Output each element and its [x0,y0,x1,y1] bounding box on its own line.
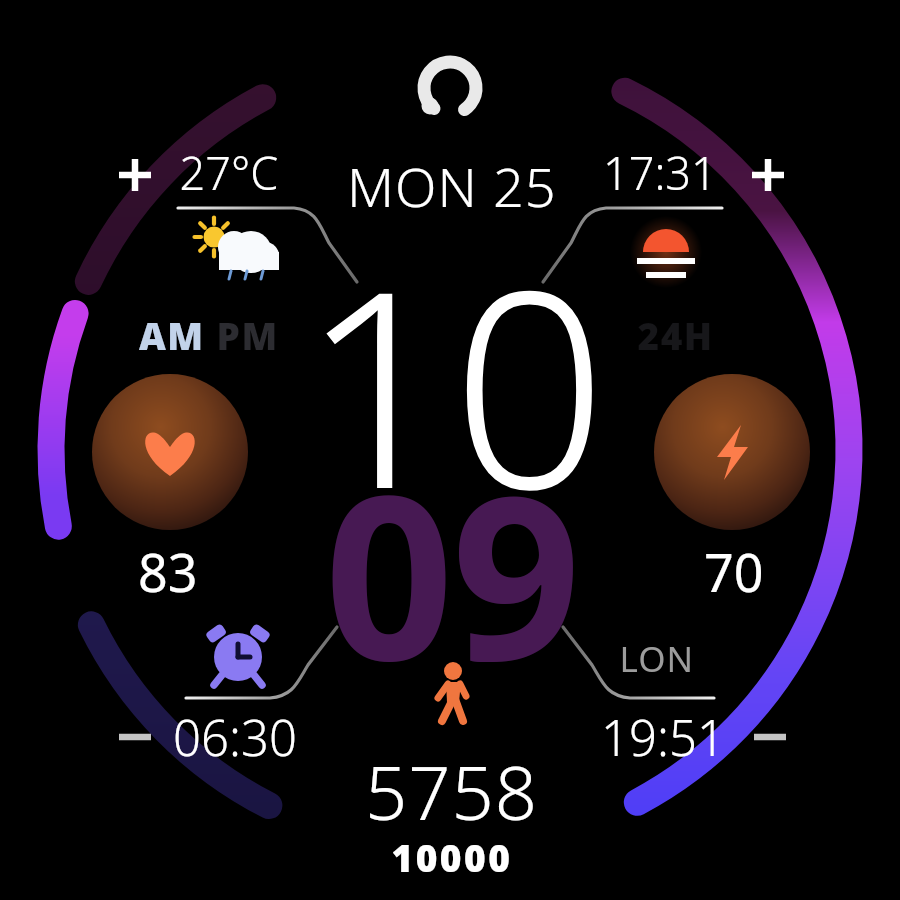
button[interactable]: Battery 70 percent [648,369,819,540]
button[interactable]: Time 10:09 [297,234,603,612]
button[interactable]: London time 19:51 [567,621,765,738]
button[interactable]: Date Monday 25 [324,144,576,216]
button[interactable]: Sunset 17:31 [567,144,765,270]
button[interactable]: Weather, 27 degrees Celsius [126,144,324,270]
button[interactable]: Alarm 06:30 [126,621,324,738]
button[interactable]: Heart rate 83 [90,369,261,540]
button[interactable]: Steps 5758 of 10000 [324,666,576,846]
